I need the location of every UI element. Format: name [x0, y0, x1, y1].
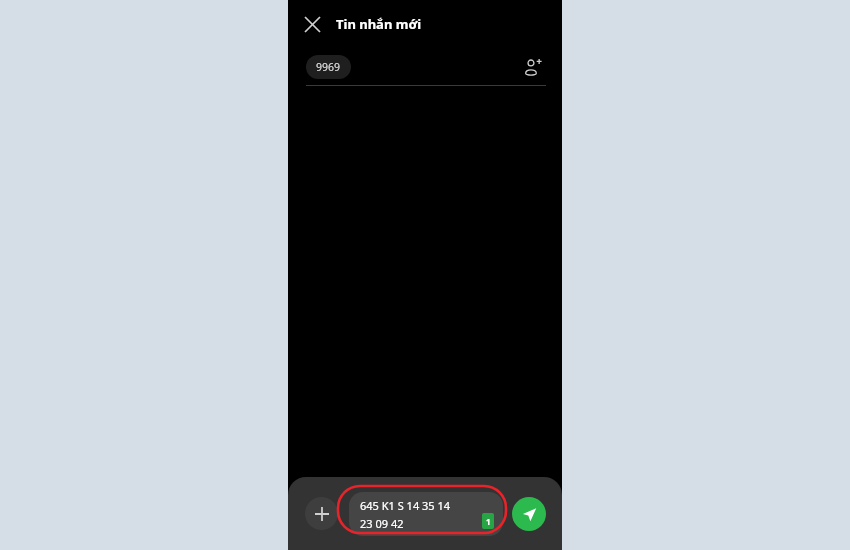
staticText: 9969 [316, 60, 341, 74]
button[interactable]: 645 K1 S 14 35 14 [349, 492, 503, 536]
button[interactable]: Close [294, 6, 330, 42]
staticText: 1 [486, 516, 491, 527]
staticText: 23 09 42 [360, 516, 404, 531]
button[interactable]: Send [512, 497, 546, 531]
staticText: 645 K1 S 14 35 14 [360, 498, 451, 513]
button[interactable]: Add contact [516, 51, 548, 83]
button[interactable]: 9969 [306, 55, 351, 79]
staticText: Tin nhắn mới [336, 15, 422, 33]
button[interactable]: Attach [305, 497, 338, 530]
